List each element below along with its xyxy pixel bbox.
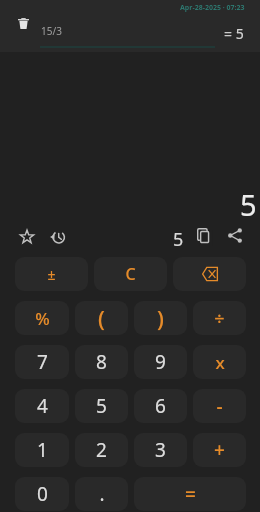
- staticText: ±: [47, 265, 56, 284]
- staticText: Apr-28-2025 · 07:23: [180, 3, 245, 13]
- button[interactable]: ÷: [193, 301, 246, 335]
- staticText: 8: [96, 349, 107, 375]
- staticText: 3: [155, 437, 166, 463]
- button[interactable]: 3: [134, 433, 187, 467]
- button[interactable]: 1: [15, 433, 69, 467]
- button[interactable]: =: [134, 477, 246, 511]
- button[interactable]: C: [94, 257, 167, 291]
- button[interactable]: Backspace: [173, 257, 246, 291]
- staticText: 4: [37, 393, 48, 419]
- staticText: 5: [240, 185, 257, 224]
- button[interactable]: 4: [15, 389, 69, 423]
- button[interactable]: (: [75, 301, 128, 335]
- button[interactable]: 6: [134, 389, 187, 423]
- button[interactable]: 0: [15, 477, 69, 511]
- staticText: +: [214, 437, 225, 463]
- staticText: ): [157, 303, 164, 333]
- staticText: ÷: [214, 306, 225, 331]
- staticText: 2: [96, 437, 107, 463]
- staticText: =: [185, 481, 196, 507]
- staticText: 0: [37, 481, 48, 507]
- staticText: x: [215, 351, 225, 374]
- button[interactable]: .: [75, 477, 128, 511]
- staticText: 6: [155, 393, 166, 419]
- staticText: 1: [37, 437, 48, 463]
- button[interactable]: Copy result: [190, 224, 214, 248]
- button[interactable]: Delete history entry: [14, 13, 32, 31]
- staticText: = 5: [224, 24, 244, 43]
- staticText: 15/3: [41, 24, 62, 38]
- button[interactable]: 7: [15, 345, 69, 379]
- staticText: %: [35, 307, 50, 330]
- button[interactable]: ±: [15, 257, 88, 291]
- staticText: 7: [37, 349, 48, 375]
- staticText: -: [216, 393, 223, 419]
- button[interactable]: Share: [222, 223, 246, 247]
- button[interactable]: History: [44, 224, 68, 248]
- staticText: 5: [96, 393, 107, 419]
- staticText: (: [98, 303, 105, 333]
- button[interactable]: -: [193, 389, 246, 423]
- button[interactable]: Add to favorites: [14, 224, 38, 248]
- button[interactable]: %: [15, 301, 69, 335]
- staticText: C: [125, 263, 136, 285]
- staticText: 5: [173, 227, 184, 252]
- button[interactable]: 5: [75, 389, 128, 423]
- staticText: 9: [155, 349, 166, 375]
- button[interactable]: ): [134, 301, 187, 335]
- button[interactable]: x: [193, 345, 246, 379]
- button[interactable]: 9: [134, 345, 187, 379]
- button[interactable]: +: [193, 433, 246, 467]
- staticText: .: [99, 481, 105, 507]
- button[interactable]: 8: [75, 345, 128, 379]
- button[interactable]: 2: [75, 433, 128, 467]
